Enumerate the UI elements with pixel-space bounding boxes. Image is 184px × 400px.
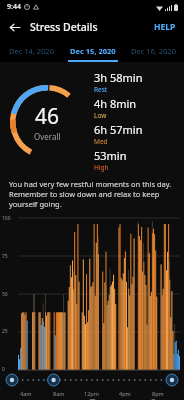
staticText: Rest xyxy=(94,85,108,94)
staticText: Stress Details xyxy=(30,20,98,34)
staticText: 4h 8min xyxy=(94,96,137,111)
staticText: 75 xyxy=(2,253,8,260)
staticText: Dec 15, 2020 xyxy=(70,46,116,56)
staticText: 12pm xyxy=(84,390,99,397)
button[interactable]: HELP xyxy=(146,17,184,37)
staticText: High xyxy=(94,163,109,172)
button[interactable]: Dec 15, 2020 xyxy=(62,40,123,62)
button[interactable]: Dec 16, 2020 xyxy=(123,40,184,62)
staticText: 46 xyxy=(35,102,60,131)
staticText: 53min xyxy=(94,148,127,163)
staticText: Overall xyxy=(34,131,61,142)
staticText: 8pm xyxy=(152,390,164,397)
staticText: 4pm xyxy=(119,390,131,397)
staticText: Low xyxy=(94,111,107,120)
staticText: 9:44 xyxy=(7,2,21,12)
staticText: Dec 16, 2020 xyxy=(131,46,176,56)
staticText: 0 xyxy=(2,366,5,373)
staticText: Dec 14, 2020 xyxy=(9,46,54,56)
staticText: 50 xyxy=(2,291,8,298)
staticText: HELP xyxy=(154,21,176,33)
button[interactable]: Back xyxy=(3,16,25,38)
button[interactable]: Dec 14, 2020 xyxy=(0,40,62,62)
staticText: Med xyxy=(94,137,108,146)
staticText: 3h 58min xyxy=(94,70,143,85)
staticText: 25 xyxy=(2,328,8,335)
staticText: You had very few restful moments on this… xyxy=(9,179,175,209)
staticText: 8am xyxy=(53,390,65,397)
staticText: 100 xyxy=(2,215,11,222)
staticText: 4am xyxy=(20,390,32,397)
staticText: 6h 57min xyxy=(94,122,143,137)
